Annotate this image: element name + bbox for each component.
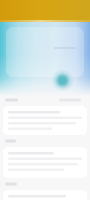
button[interactable]: See all xyxy=(58,97,82,102)
button[interactable]: Open item xyxy=(3,190,87,200)
button[interactable]: Featured card xyxy=(6,27,84,77)
button[interactable]: Open item xyxy=(3,147,87,178)
button[interactable]: Add xyxy=(52,70,73,91)
button[interactable]: Open item xyxy=(3,106,87,135)
